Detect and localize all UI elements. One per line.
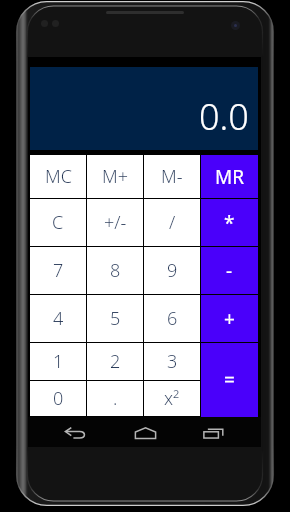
button[interactable]: .	[87, 381, 143, 416]
staticText: *	[224, 210, 235, 236]
button[interactable]: -	[201, 247, 258, 294]
staticText: 6	[167, 306, 178, 331]
staticText: 1	[53, 349, 64, 374]
button[interactable]: MC	[30, 155, 86, 198]
button[interactable]: M-	[144, 155, 200, 198]
staticText: 0	[53, 386, 64, 411]
button[interactable]: 3	[144, 343, 200, 380]
button[interactable]: +	[201, 295, 258, 342]
button[interactable]: C	[30, 199, 86, 246]
button[interactable]: *	[201, 199, 258, 246]
staticText: 5	[110, 306, 121, 331]
staticText: x²	[164, 386, 180, 411]
staticText: =	[224, 367, 235, 393]
staticText: 3	[167, 349, 178, 374]
staticText: M-	[161, 164, 183, 189]
staticText: 4	[53, 306, 64, 331]
button[interactable]: Recent apps	[191, 419, 237, 447]
staticText: 2	[110, 349, 121, 374]
staticText: M+	[102, 164, 128, 189]
button[interactable]: 7	[30, 247, 86, 294]
staticText: 7	[53, 258, 64, 283]
button[interactable]: MR	[201, 155, 258, 198]
button[interactable]: 4	[30, 295, 86, 342]
staticText: MR	[215, 164, 245, 190]
button[interactable]: 0	[30, 381, 86, 416]
button[interactable]: 6	[144, 295, 200, 342]
staticText: +/-	[104, 210, 127, 235]
button[interactable]: 5	[87, 295, 143, 342]
button[interactable]: Back	[52, 419, 98, 447]
staticText: 8	[110, 258, 121, 283]
button[interactable]: 9	[144, 247, 200, 294]
button[interactable]: +/-	[87, 199, 143, 246]
staticText: C	[52, 210, 64, 235]
button[interactable]: Home	[122, 419, 168, 447]
staticText: -	[226, 258, 233, 284]
button[interactable]: /	[144, 199, 200, 246]
button[interactable]: 8	[87, 247, 143, 294]
staticText: 9	[167, 258, 178, 283]
staticText: /	[169, 210, 176, 235]
button[interactable]: 1	[30, 343, 86, 380]
staticText: .	[113, 386, 118, 411]
staticText: 0.0	[199, 92, 249, 141]
button[interactable]: 2	[87, 343, 143, 380]
button[interactable]: x²	[144, 381, 200, 416]
button[interactable]: M+	[87, 155, 143, 198]
button[interactable]: =	[201, 343, 258, 417]
staticText: +	[224, 306, 235, 332]
staticText: MC	[45, 164, 72, 189]
